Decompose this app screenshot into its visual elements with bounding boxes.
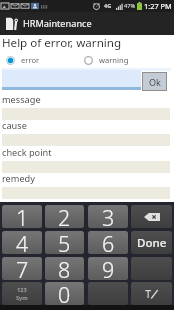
button[interactable]: HRMaintenance: [6, 12, 174, 35]
other: Handwriting input: [145, 289, 158, 299]
staticText: HRMaintenance: [23, 17, 92, 30]
staticText: 9: [102, 257, 115, 278]
button[interactable]: 4: [2, 231, 42, 254]
button[interactable]: 0: [45, 282, 84, 305]
button[interactable]: 7: [2, 257, 42, 280]
button[interactable]: error: [6, 53, 40, 67]
button[interactable]: Handwriting input: [131, 282, 172, 305]
button[interactable]: [2, 70, 141, 90]
staticText: warning: [99, 55, 129, 65]
button[interactable]: 9: [88, 257, 128, 280]
button[interactable]: 123: [2, 282, 42, 305]
button[interactable]: 8: [45, 257, 84, 280]
staticText: Sym: [16, 294, 28, 302]
button[interactable]: Ok: [142, 72, 167, 91]
button[interactable]: warning: [84, 53, 129, 67]
button[interactable]: Delete: [131, 205, 172, 228]
staticText: Help of error, warning: [2, 35, 122, 51]
staticText: Done: [137, 235, 167, 251]
button[interactable]: 2: [45, 205, 84, 228]
staticText: check point: [2, 146, 52, 159]
staticText: 2: [58, 205, 71, 226]
button[interactable]: 3: [88, 205, 128, 228]
staticText: 4G: [104, 2, 112, 10]
staticText: 3: [102, 205, 115, 226]
button[interactable]: [88, 282, 128, 305]
button[interactable]: Done: [131, 231, 172, 254]
staticText: 47%: [124, 2, 136, 10]
staticText: 5: [58, 231, 71, 252]
staticText: 7: [16, 257, 29, 278]
staticText: remedy: [2, 172, 35, 185]
button[interactable]: 5: [45, 231, 84, 254]
staticText: 1: [16, 205, 29, 226]
staticText: message: [2, 93, 41, 106]
staticText: 1:27 PM: [144, 1, 172, 11]
staticText: 6: [102, 231, 115, 252]
staticText: 0: [58, 282, 71, 303]
staticText: 4: [16, 231, 29, 252]
staticText: cause: [2, 119, 27, 132]
staticText: Ok: [149, 76, 161, 88]
button[interactable]: [131, 257, 172, 280]
staticText: error: [21, 55, 40, 65]
other: Delete: [144, 213, 160, 221]
staticText: 8: [58, 257, 71, 278]
button[interactable]: 1: [2, 205, 42, 228]
button[interactable]: 6: [88, 231, 128, 254]
staticText: 123: [17, 286, 27, 294]
